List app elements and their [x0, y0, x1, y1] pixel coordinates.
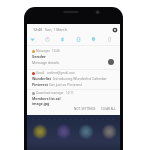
staticText: andrew@gmail.com — [47, 71, 75, 75]
button[interactable]: Bluetooth — [57, 34, 68, 45]
button[interactable]: Wi-Fi — [27, 34, 38, 45]
button[interactable]: Auto rotate — [73, 34, 84, 45]
staticText: Get just so Pinterest — [49, 82, 83, 87]
staticText: NOT. SETTINGS — [74, 107, 96, 111]
button[interactable]: Location — [88, 34, 99, 45]
button[interactable]: Settings — [111, 26, 118, 33]
staticText: image.jpg — [32, 101, 50, 106]
staticText: Introducing Wunderlist Calendar — [53, 76, 107, 81]
staticText: 12:11 — [66, 91, 74, 95]
button[interactable]: CLEAR ALL — [99, 106, 118, 112]
staticText: Gmail — [36, 71, 45, 75]
staticText: Pinterest — [32, 82, 48, 87]
staticText: 12:46 — [33, 27, 43, 32]
staticText: Message details — [32, 60, 60, 65]
button[interactable]: Flashlight — [104, 34, 115, 45]
staticText: Sun, 1 March — [45, 27, 67, 32]
button[interactable]: Messages — [27, 48, 120, 65]
button[interactable]: Download manager — [27, 90, 120, 106]
button[interactable]: NOT. SETTINGS — [72, 106, 98, 112]
staticText: Sender — [32, 54, 46, 59]
staticText: 12:46 — [52, 49, 60, 53]
staticText: CLEAR ALL — [101, 107, 116, 111]
staticText: Messages — [36, 49, 50, 53]
button[interactable]: Sound — [42, 34, 53, 45]
staticText: Members list.xsl — [32, 96, 61, 101]
staticText: Download manager — [36, 91, 64, 95]
staticText: Wunderlist — [32, 76, 52, 81]
button[interactable]: Gmail — [27, 70, 120, 87]
